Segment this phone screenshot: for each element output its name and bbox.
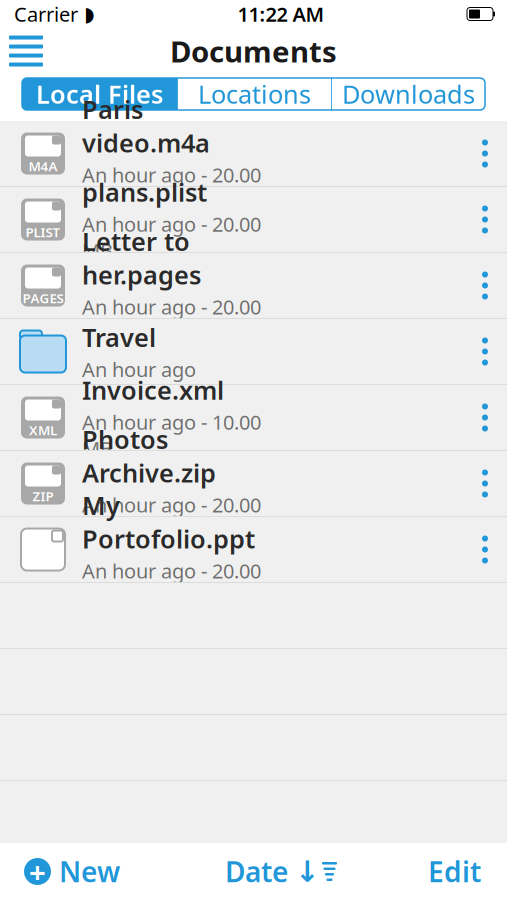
button[interactable]: + <box>0 843 134 899</box>
staticText: PLIST <box>25 223 60 241</box>
staticText: My Portofolio.ppt <box>82 488 255 556</box>
staticText: Invoice.xml <box>82 373 224 407</box>
staticText: An hour ago - 10.00 MB <box>82 409 261 462</box>
button[interactable]: Menu <box>0 29 52 73</box>
staticText: Date <box>225 853 288 890</box>
button[interactable]: M4A <box>0 121 507 187</box>
staticText: XML <box>29 421 57 439</box>
staticText: M4A <box>28 157 57 175</box>
staticText: Travel <box>82 320 156 354</box>
staticText: Documents <box>170 31 337 70</box>
staticText: Paris video.m4a <box>82 92 210 160</box>
staticText: Locations <box>198 77 311 111</box>
button[interactable]: Locations <box>178 78 331 110</box>
staticText: Carrier <box>14 1 78 27</box>
staticText: ◗ <box>84 3 95 25</box>
staticText: Edit <box>428 853 481 890</box>
staticText: ZIP <box>32 487 53 505</box>
staticText: Local Files <box>36 77 163 111</box>
button[interactable]: More actions <box>463 450 507 516</box>
staticText: An hour ago - 20.00 MB <box>82 492 261 545</box>
button[interactable]: More actions <box>463 120 507 186</box>
staticText: An hour ago <box>82 356 196 383</box>
staticText: An hour ago - 20.00 MB <box>82 211 261 264</box>
button[interactable]: My Portofolio.ppt <box>0 517 507 583</box>
staticText: plans.plist <box>82 175 207 209</box>
button[interactable]: XML <box>0 385 507 451</box>
staticText: ↓ <box>295 855 320 888</box>
staticText: Downloads <box>342 77 475 111</box>
staticText: PAGES <box>22 289 63 307</box>
button[interactable]: More actions <box>463 384 507 450</box>
staticText: An hour ago - 20.00 MB <box>82 162 261 215</box>
button[interactable]: Edit <box>428 843 507 899</box>
staticText: New <box>59 853 120 890</box>
staticText: An hour ago - 20.00 MB <box>82 558 261 611</box>
button[interactable]: More actions <box>463 516 507 582</box>
button[interactable]: ZIP <box>0 451 507 517</box>
staticText: An hour ago - 20.00 MB <box>82 294 261 347</box>
button[interactable]: Local Files <box>22 78 177 110</box>
staticText: 11:22 AM <box>237 1 324 27</box>
button[interactable]: More actions <box>463 318 507 384</box>
staticText: Letter to her.pages <box>82 224 201 292</box>
button[interactable]: More actions <box>463 252 507 318</box>
button[interactable]: PLIST <box>0 187 507 253</box>
button[interactable]: Travel <box>0 319 507 385</box>
staticText: Photos Archive.zip <box>82 422 216 490</box>
button[interactable]: Downloads <box>332 78 485 110</box>
staticText: + <box>29 852 46 891</box>
button[interactable]: Date <box>225 843 337 899</box>
button[interactable]: PAGES <box>0 253 507 319</box>
button[interactable]: More actions <box>463 186 507 252</box>
